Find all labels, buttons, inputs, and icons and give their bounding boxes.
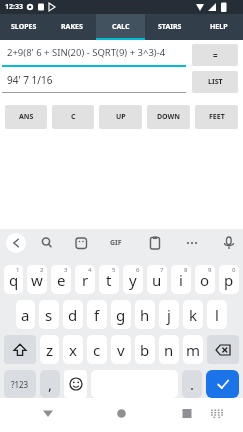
button[interactable]: o [195, 265, 215, 294]
button[interactable]: UP [99, 105, 142, 129]
button[interactable]: q [4, 265, 23, 294]
staticText: DOWN [157, 112, 181, 122]
button[interactable]: ?123 [4, 370, 36, 398]
button[interactable] [0, 229, 34, 257]
button[interactable]: , [40, 370, 60, 398]
staticText: 7 [160, 266, 164, 274]
button[interactable] [206, 370, 239, 398]
staticText: 0 [232, 266, 236, 274]
staticText: ANS [19, 112, 34, 122]
staticText: t [106, 270, 112, 290]
button[interactable] [0, 398, 81, 432]
staticText: 2+9(8' 6 + SIN(20) - SQRT(9) + 3^3)-4 [7, 46, 166, 59]
button[interactable]: m [183, 335, 203, 364]
button[interactable]: j [159, 300, 179, 329]
staticText: n [164, 340, 174, 360]
staticText: y [129, 270, 137, 290]
button[interactable] [103, 229, 138, 257]
button[interactable]: x [63, 335, 83, 364]
button[interactable]: w [27, 265, 47, 294]
button[interactable]: i [171, 265, 191, 294]
button[interactable]: = [192, 44, 238, 66]
button[interactable]: u [147, 265, 167, 294]
button[interactable]: l [207, 300, 227, 329]
staticText: h [140, 305, 150, 325]
staticText: u [152, 270, 162, 290]
button[interactable]: f [87, 300, 107, 329]
button[interactable]: y [123, 265, 143, 294]
staticText: j [167, 305, 171, 325]
button[interactable]: h [135, 300, 155, 329]
button[interactable]: STAIRS [145, 14, 194, 40]
button[interactable]: SLOPES [0, 14, 48, 40]
button[interactable]: CALC [96, 14, 145, 40]
staticText: m [186, 340, 201, 360]
staticText: LIST [208, 77, 223, 87]
staticText: c [93, 340, 101, 360]
staticText: w [31, 270, 43, 290]
staticText: x [69, 340, 77, 360]
button[interactable]: HELP [194, 14, 243, 40]
button[interactable]: p [219, 265, 239, 294]
button[interactable]: k [183, 300, 203, 329]
staticText: z [46, 340, 54, 360]
staticText: 9 [208, 266, 212, 274]
staticText: k [189, 305, 198, 325]
button[interactable]: RAKES [48, 14, 96, 40]
button[interactable]: g [111, 300, 131, 329]
staticText: GIF [110, 238, 122, 248]
staticText: p [224, 270, 234, 290]
button[interactable]: LIST [192, 71, 238, 93]
button[interactable] [34, 229, 68, 257]
button[interactable]: FEET [195, 105, 238, 129]
button[interactable]: c [87, 335, 107, 364]
staticText: FEET [209, 112, 225, 122]
staticText: ?123 [11, 379, 29, 390]
staticText: . [190, 374, 195, 394]
button[interactable]: s [39, 300, 59, 329]
staticText: 5 [112, 266, 116, 274]
button[interactable]: DOWN [147, 105, 190, 129]
button[interactable] [138, 229, 173, 257]
button[interactable] [81, 398, 162, 432]
staticText: = [213, 50, 218, 61]
staticText: s [45, 305, 53, 325]
button[interactable]: . [182, 370, 202, 398]
button[interactable]: z [40, 335, 59, 364]
button[interactable] [68, 229, 103, 257]
staticText: UP [116, 112, 126, 122]
button[interactable] [207, 335, 239, 364]
staticText: 6 [136, 266, 140, 274]
button[interactable]: b [135, 335, 155, 364]
button[interactable] [4, 335, 36, 364]
button[interactable] [162, 398, 243, 432]
button[interactable]: t [99, 265, 119, 294]
staticText: 4 [88, 266, 92, 274]
button[interactable]: e [51, 265, 71, 294]
staticText: r [82, 270, 89, 290]
staticText: a [21, 305, 30, 325]
button[interactable] [64, 370, 87, 398]
staticText: b [140, 340, 150, 360]
button[interactable]: r [75, 265, 95, 294]
staticText: g [116, 305, 126, 325]
staticText: 94' 7 1/16 [7, 73, 53, 87]
button[interactable]: d [63, 300, 83, 329]
button[interactable]: a [16, 300, 35, 329]
button[interactable]: C [52, 105, 94, 129]
button[interactable]: ANS [5, 105, 47, 129]
staticText: 12:33 [5, 2, 23, 12]
button[interactable]: v [111, 335, 131, 364]
button[interactable] [213, 400, 243, 430]
staticText: RAKES [61, 22, 83, 32]
staticText: i [179, 270, 183, 290]
staticText: 2 [40, 266, 44, 274]
staticText: o [200, 270, 210, 290]
button[interactable]: n [159, 335, 179, 364]
button[interactable] [208, 229, 243, 257]
button[interactable] [173, 229, 208, 257]
staticText: STAIRS [158, 22, 182, 32]
staticText: 8 [184, 266, 188, 274]
staticText: HELP [210, 22, 228, 32]
